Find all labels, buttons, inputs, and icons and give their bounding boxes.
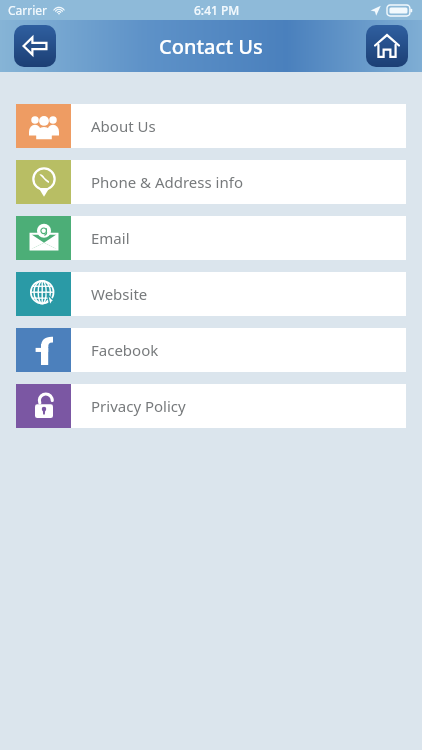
staticText: 6:41 PM <box>194 2 240 18</box>
button[interactable]: Phone & Address info <box>16 160 406 204</box>
staticText: Privacy Policy <box>91 396 186 416</box>
button[interactable]: Home <box>366 25 408 67</box>
button[interactable]: Back <box>14 25 56 67</box>
staticText: Contact Us <box>159 33 263 60</box>
button[interactable]: Email <box>16 216 406 260</box>
button[interactable]: Privacy Policy <box>16 384 406 428</box>
staticText: Phone & Address info <box>91 172 243 192</box>
button[interactable]: Facebook <box>16 328 406 372</box>
staticText: Facebook <box>91 340 159 360</box>
staticText: Carrier <box>8 2 48 18</box>
staticText: Email <box>91 228 130 248</box>
button[interactable]: About Us <box>16 104 406 148</box>
staticText: About Us <box>91 116 156 136</box>
staticText: Website <box>91 284 148 304</box>
button[interactable]: Website <box>16 272 406 316</box>
